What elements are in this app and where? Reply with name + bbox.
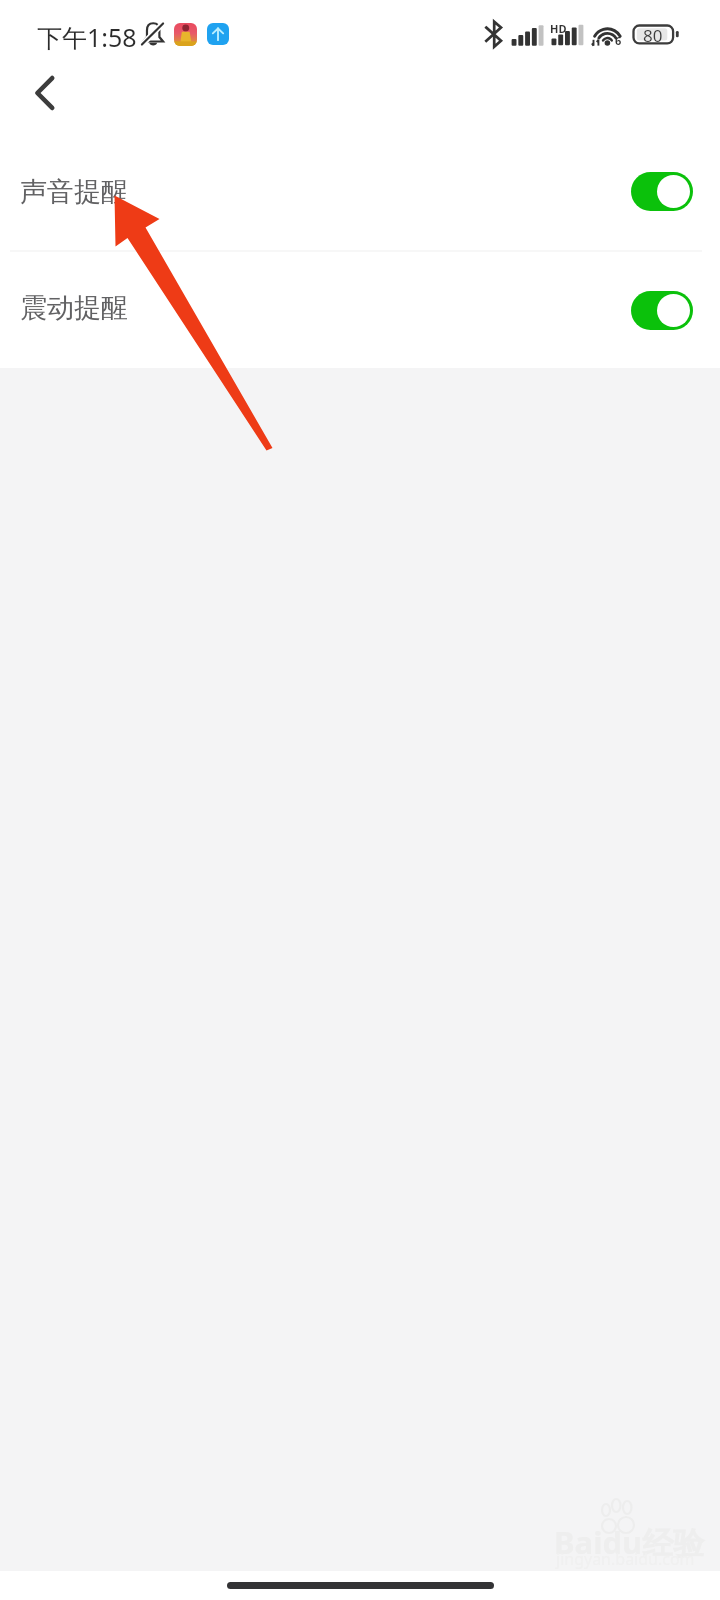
button[interactable]: 震动提醒: [0, 252, 720, 368]
button[interactable]: Toggle on: [631, 172, 693, 211]
staticText: HD: [550, 21, 567, 36]
staticText: 震动提醒: [20, 291, 128, 325]
staticText: 下午1:58: [37, 20, 137, 54]
staticText: 80: [643, 24, 663, 47]
staticText: Baidu经验: [554, 1521, 705, 1563]
staticText: 6: [615, 33, 622, 48]
button[interactable]: Toggle on: [631, 291, 693, 330]
staticText: 声音提醒: [20, 175, 128, 209]
button[interactable]: Back: [13, 61, 77, 125]
button[interactable]: 声音提醒: [0, 132, 720, 250]
